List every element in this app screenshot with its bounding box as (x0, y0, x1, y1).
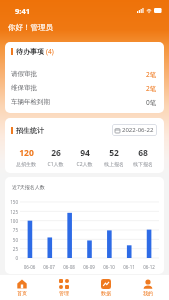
staticText: 车辆年检到期 (11, 98, 50, 106)
staticText: 150 (9, 199, 18, 205)
staticText: 06-07 (39, 264, 59, 270)
staticText: 25 (9, 246, 18, 252)
button[interactable]: 车辆年检到期 (11, 95, 157, 109)
staticText: 维保审批 (11, 84, 37, 92)
staticText: 我的 (143, 290, 153, 296)
staticText: 06-12 (139, 264, 159, 270)
staticText: 68 (138, 147, 148, 159)
button[interactable]: 52 (99, 147, 128, 167)
staticText: 50 (9, 237, 18, 243)
staticText: 94 (80, 147, 90, 159)
staticText: 线上报名 (104, 161, 124, 167)
staticText: 2笔 (146, 70, 157, 79)
button[interactable]: 维保审批 (11, 81, 157, 95)
button[interactable]: 2022-06-22 (112, 124, 157, 136)
staticText: 你好！管理员 (8, 23, 53, 32)
staticText: 100 (9, 218, 18, 224)
staticText: 26 (51, 147, 61, 159)
button[interactable]: 管理 (43, 275, 85, 300)
staticText: 线下报名 (133, 161, 153, 167)
staticText: 请假审批 (11, 70, 37, 78)
button[interactable]: 我的 (127, 275, 169, 300)
staticText: 总招生数 (16, 161, 36, 167)
staticText: 06-09 (79, 264, 99, 270)
staticText: 120 (19, 147, 34, 159)
staticText: 9:41 (15, 6, 30, 16)
button[interactable]: 94 (70, 147, 99, 168)
staticText: 06-11 (119, 264, 139, 270)
staticText: C1人数 (47, 161, 64, 168)
button[interactable]: 120 (11, 147, 41, 167)
button[interactable]: 68 (128, 147, 157, 167)
button[interactable]: 请假审批 (11, 67, 157, 81)
staticText: 06-06 (20, 264, 39, 270)
staticText: 125 (9, 209, 18, 215)
staticText: 招生统计 (16, 126, 44, 135)
staticText: 75 (9, 227, 18, 233)
staticText: 52 (109, 147, 119, 159)
button[interactable]: 26 (41, 147, 70, 168)
staticText: 近7天报名人数 (12, 184, 45, 191)
staticText: 0笔 (146, 98, 157, 107)
staticText: (4) (46, 47, 54, 56)
button[interactable]: 首页 (0, 275, 43, 300)
staticText: 0 (9, 255, 18, 261)
staticText: 06-10 (99, 264, 119, 270)
staticText: 管理 (59, 290, 69, 296)
staticText: 数据 (101, 290, 111, 296)
staticText: 待办事项 (16, 47, 44, 56)
staticText: 2笔 (146, 84, 157, 93)
staticText: 06-08 (59, 264, 79, 270)
button[interactable]: 数据 (85, 275, 127, 300)
staticText: 首页 (17, 290, 27, 296)
staticText: 2022-06-22 (122, 126, 154, 134)
staticText: C2人数 (76, 161, 93, 168)
